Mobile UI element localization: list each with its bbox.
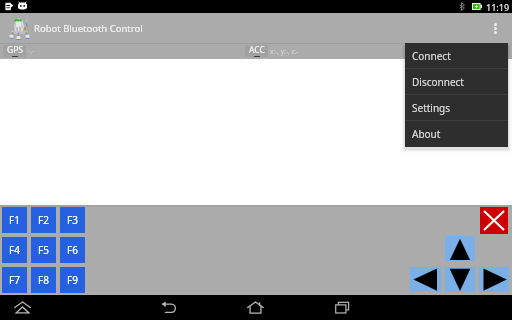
button[interactable]: Left bbox=[410, 267, 441, 292]
button[interactable]: Backward bbox=[445, 267, 475, 292]
button[interactable]: GPS bbox=[3, 45, 26, 57]
staticText: Robot Bluetooth Control bbox=[34, 22, 143, 35]
staticText: x:-, y:-, z:- bbox=[270, 47, 299, 56]
staticText: F1 bbox=[9, 213, 20, 227]
button[interactable]: More options bbox=[478, 13, 512, 43]
button[interactable]: Up bbox=[8, 295, 36, 320]
staticText: F5 bbox=[38, 243, 49, 257]
button[interactable]: F5 bbox=[31, 237, 56, 263]
staticText: F7 bbox=[9, 273, 20, 287]
button[interactable]: Stop bbox=[480, 207, 508, 234]
staticText: Settings bbox=[412, 101, 451, 115]
staticText: Disconnect bbox=[412, 75, 464, 89]
staticText: F2 bbox=[38, 213, 49, 227]
button[interactable]: Back bbox=[155, 295, 183, 320]
button[interactable]: F2 bbox=[31, 207, 56, 233]
button[interactable]: F9 bbox=[60, 267, 85, 293]
button[interactable]: Home bbox=[241, 295, 269, 320]
staticText: GPS bbox=[7, 44, 23, 56]
button[interactable]: F8 bbox=[31, 267, 56, 293]
button[interactable]: Connect bbox=[405, 43, 508, 69]
staticText: F6 bbox=[67, 243, 78, 257]
button[interactable]: Disconnect bbox=[405, 69, 508, 95]
button[interactable]: F1 bbox=[2, 207, 27, 233]
staticText: About bbox=[412, 127, 441, 141]
staticText: F3 bbox=[67, 213, 78, 227]
staticText: F8 bbox=[38, 273, 49, 287]
staticText: ACC bbox=[249, 44, 265, 56]
button[interactable]: F4 bbox=[2, 237, 27, 263]
staticText: F4 bbox=[9, 243, 20, 257]
staticText: Connect bbox=[412, 49, 451, 63]
button[interactable]: F3 bbox=[60, 207, 85, 233]
staticText: 11:19 bbox=[486, 1, 510, 13]
button[interactable]: Forward bbox=[445, 236, 475, 261]
staticText: F9 bbox=[67, 273, 78, 287]
button[interactable]: F6 bbox=[60, 237, 85, 263]
button[interactable]: Recents bbox=[328, 295, 356, 320]
staticText: -,- bbox=[28, 46, 35, 56]
button[interactable]: Settings bbox=[405, 95, 508, 121]
button[interactable]: Right bbox=[479, 267, 509, 292]
button[interactable]: F7 bbox=[2, 267, 27, 293]
button[interactable]: About bbox=[405, 121, 508, 147]
button[interactable]: ACC bbox=[245, 45, 268, 57]
